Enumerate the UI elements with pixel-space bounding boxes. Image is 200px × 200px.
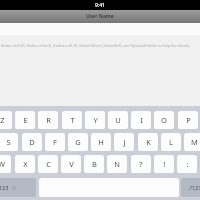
staticText: : [186, 159, 189, 169]
button[interactable]: I [131, 111, 151, 129]
button[interactable]: N [107, 155, 127, 173]
button[interactable]: .?123 [181, 178, 200, 197]
button[interactable]: L [161, 133, 181, 151]
staticText: N [114, 159, 120, 169]
staticText: T [70, 115, 75, 125]
staticText: L [169, 137, 173, 147]
staticText: P [186, 115, 191, 125]
staticText: .?123 [0, 184, 9, 191]
staticText: ! [163, 159, 166, 169]
button[interactable]: X [15, 155, 35, 173]
button[interactable]: .?123 [0, 178, 36, 197]
staticText: 9:41 [95, 2, 105, 9]
staticText: U [115, 115, 121, 125]
button[interactable]: R [38, 111, 58, 129]
staticText: I [140, 115, 143, 125]
staticText: ⊕ [12, 185, 17, 191]
button[interactable]: E [15, 111, 35, 129]
staticText: D [29, 137, 35, 147]
button[interactable]: C [38, 155, 58, 173]
staticText: F [53, 137, 57, 147]
staticText: Y [93, 115, 98, 125]
staticText: V [69, 159, 74, 169]
staticText: Z [0, 115, 5, 125]
staticText: J [123, 137, 126, 147]
button[interactable]: : [177, 155, 197, 173]
staticText: User Name [86, 13, 114, 20]
button[interactable]: T [62, 111, 82, 129]
staticText: S [6, 137, 11, 147]
button[interactable]: H [91, 133, 111, 151]
staticText: R [46, 115, 51, 125]
staticText: X [23, 159, 28, 169]
button[interactable]: S [0, 133, 18, 151]
button[interactable]: K [138, 133, 158, 151]
button[interactable]: V [61, 155, 81, 173]
button[interactable]: W [0, 155, 11, 173]
staticText: M [191, 137, 198, 147]
staticText: W [0, 159, 5, 169]
staticText: K [146, 137, 151, 147]
button[interactable]: U [108, 111, 128, 129]
button[interactable]: F [45, 133, 65, 151]
staticText: ? [139, 159, 143, 169]
staticText: B [92, 159, 97, 169]
button[interactable]: D [22, 133, 42, 151]
button[interactable]: G [68, 133, 88, 151]
button[interactable]: Y [85, 111, 105, 129]
button[interactable]: ! [154, 155, 174, 173]
staticText: (Index A-H-V), (Index of first), (Index … [1, 43, 191, 48]
button[interactable]: J [114, 133, 134, 151]
staticText: O [161, 115, 167, 125]
staticText: G [75, 137, 81, 147]
button[interactable]: O [154, 111, 174, 129]
staticText: C [46, 159, 51, 169]
button[interactable]: B [84, 155, 104, 173]
button[interactable]: P [178, 111, 198, 129]
button[interactable]: Z [0, 111, 12, 129]
staticText: H [98, 137, 104, 147]
staticText: .?123 [188, 184, 200, 191]
button[interactable]: ? [131, 155, 151, 173]
staticText: E [23, 115, 28, 125]
button[interactable]: M [184, 133, 200, 151]
